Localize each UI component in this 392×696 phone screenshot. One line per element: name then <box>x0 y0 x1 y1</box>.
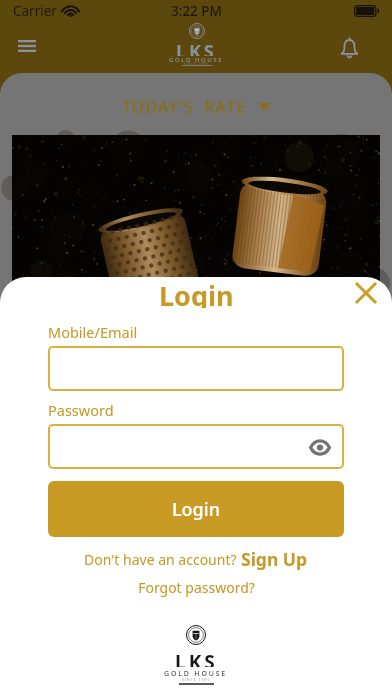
button[interactable]: Notifications <box>327 26 371 70</box>
button[interactable]: Don't have an account? <box>48 547 344 571</box>
staticText: LKS <box>175 649 218 667</box>
staticText: Forgot password? <box>138 578 255 597</box>
staticText: Password <box>48 400 114 420</box>
button[interactable]: Menu <box>5 24 49 68</box>
staticText: SINCE 1995 <box>182 678 211 681</box>
staticText: Sign Up <box>241 547 308 571</box>
button[interactable]: Forgot password? <box>48 576 344 598</box>
staticText: Login <box>159 277 234 308</box>
staticText: TODAY'S RATE <box>122 96 247 118</box>
button[interactable]: TODAY'S RATE <box>112 86 281 122</box>
button[interactable]: Close <box>347 277 385 308</box>
button[interactable]: Login <box>48 481 344 537</box>
staticText: SINCE 1995 <box>184 62 209 65</box>
staticText: GOLD HOUSE <box>169 56 224 62</box>
staticText: 3:22 PM <box>171 2 222 20</box>
button[interactable] <box>48 346 344 391</box>
button[interactable]: Show password <box>48 424 344 469</box>
staticText: Mobile/Email <box>48 322 138 342</box>
staticText: Carrier <box>13 2 57 20</box>
button[interactable]: Show password <box>305 432 335 462</box>
staticText: GOLD HOUSE <box>164 669 228 676</box>
staticText: Don't have an account? <box>84 550 241 569</box>
staticText: LKS <box>176 39 217 56</box>
staticText: Login <box>172 497 220 522</box>
